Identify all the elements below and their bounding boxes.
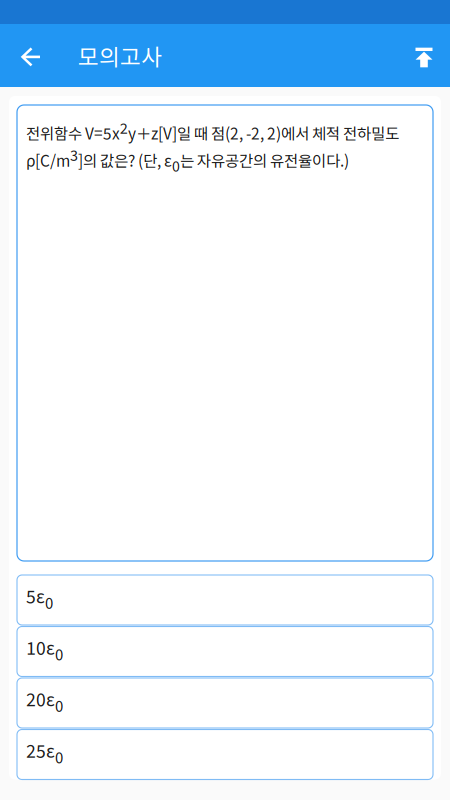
- button[interactable]: Back: [0, 24, 61, 87]
- button[interactable]: Submit: [398, 24, 450, 87]
- staticText: 전위함수 V=5x2y＋z[V]일 때 점(2, -2, 2)에서 체적 전하밀…: [26, 117, 399, 175]
- staticText: 모의고사: [78, 39, 162, 72]
- button[interactable]: 10ε0: [17, 626, 433, 676]
- staticText: 25ε0: [26, 737, 63, 768]
- staticText: 20ε0: [26, 686, 63, 716]
- button[interactable]: 20ε0: [17, 678, 433, 728]
- button[interactable]: 25ε0: [17, 729, 433, 779]
- staticText: 5ε0: [26, 583, 53, 613]
- button[interactable]: 5ε0: [17, 575, 433, 625]
- staticText: 10ε0: [26, 634, 63, 665]
